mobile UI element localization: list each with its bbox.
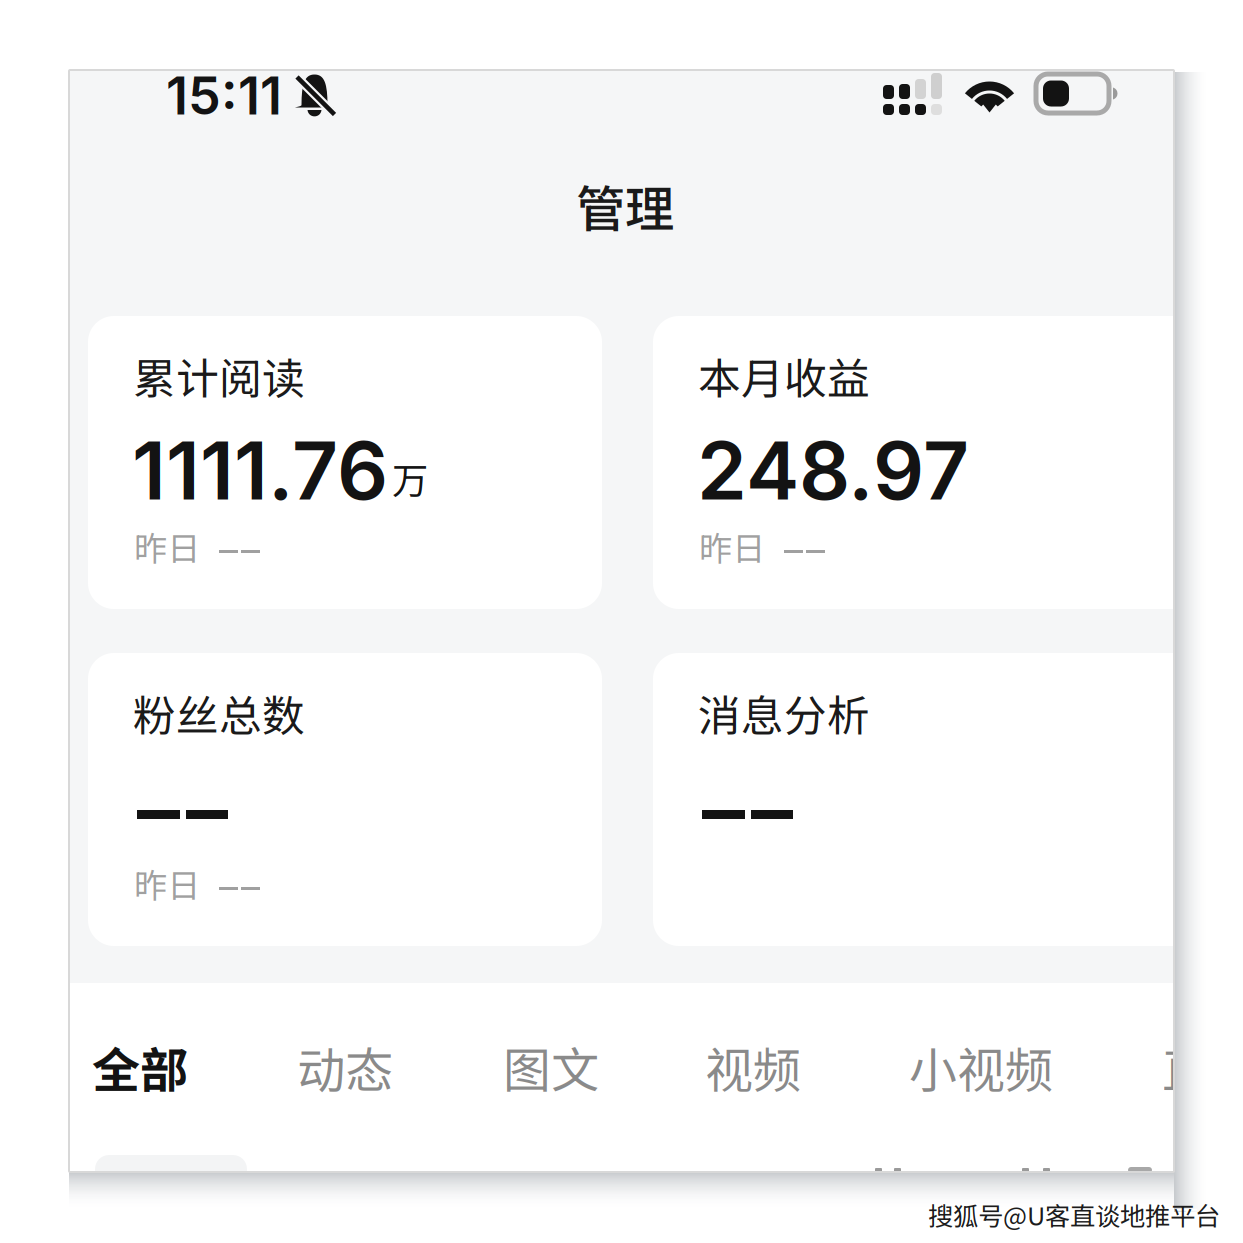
- button[interactable]: 全部: [92, 984, 188, 1131]
- staticText: 粉丝总数: [133, 682, 305, 744]
- button[interactable]: 图文: [503, 984, 599, 1131]
- staticText: 248.97: [697, 422, 969, 519]
- staticText: 累计阅读: [133, 345, 305, 407]
- button[interactable]: 动态: [297, 984, 393, 1131]
- button[interactable]: 消息分析: [653, 653, 1213, 946]
- button[interactable]: 本月收益: [653, 316, 1213, 609]
- staticText: 小视频: [909, 1032, 1053, 1101]
- staticText: 万: [392, 452, 428, 504]
- staticText: 直播: [1162, 1032, 1243, 1101]
- staticText: 搜狐号@U客直谈地推平台: [928, 1196, 1220, 1233]
- staticText: 1111.76: [132, 422, 388, 519]
- staticText: 昨日: [134, 522, 200, 570]
- staticText: 本月收益: [698, 345, 870, 407]
- button[interactable]: 视频: [705, 984, 801, 1131]
- staticText: 动态: [297, 1032, 393, 1101]
- button[interactable]: 粉丝总数: [88, 653, 602, 946]
- staticText: 搜狐号@U客直谈地推平台: [932, 1199, 1224, 1236]
- staticText: 昨日: [134, 859, 200, 907]
- staticText: 视频: [705, 1032, 801, 1101]
- staticText: 全部: [92, 1032, 188, 1101]
- staticText: 昨日: [699, 522, 765, 570]
- staticText: 图文: [503, 1032, 599, 1101]
- button[interactable]: 直播: [1162, 984, 1243, 1131]
- button[interactable]: 小视频: [909, 984, 1053, 1131]
- staticText: 管理: [576, 170, 674, 241]
- staticText: 消息分析: [698, 682, 870, 744]
- button[interactable]: 累计阅读: [88, 316, 602, 609]
- staticText: 15:11: [166, 64, 282, 127]
